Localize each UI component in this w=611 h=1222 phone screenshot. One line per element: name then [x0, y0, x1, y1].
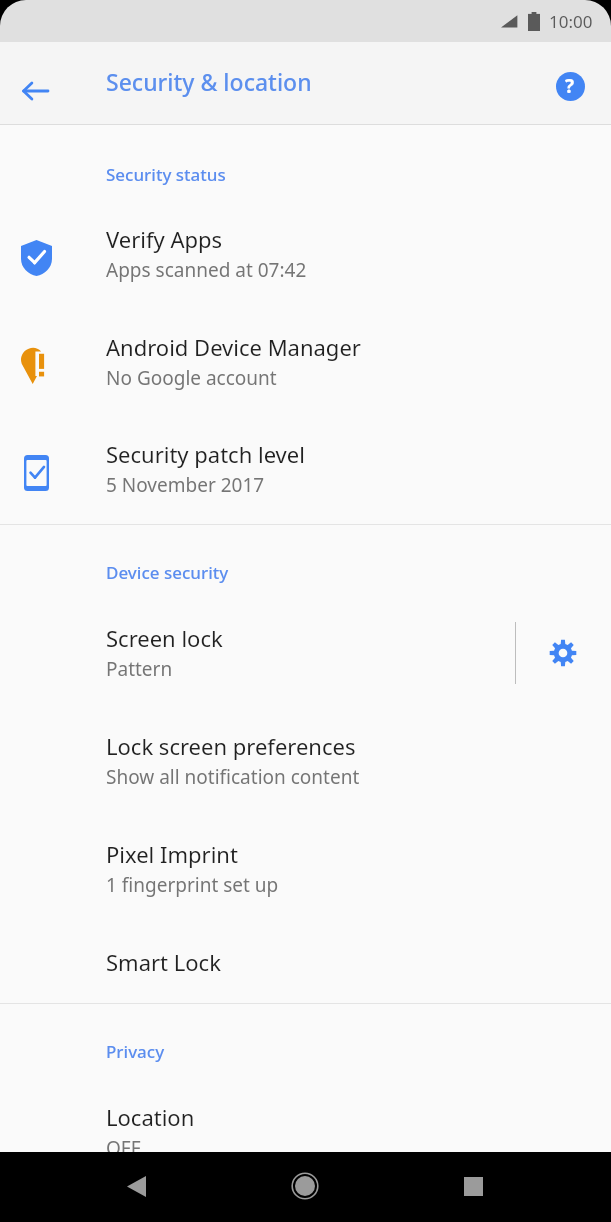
- staticText: 10:00: [549, 10, 593, 33]
- staticText: No Google account: [106, 365, 277, 391]
- staticText: Android Device Manager: [106, 332, 361, 362]
- staticText: 1 fingerprint set up: [106, 872, 279, 898]
- button[interactable]: Smart Lock: [0, 935, 611, 991]
- staticText: Privacy: [106, 1040, 165, 1063]
- button[interactable]: Recent apps: [441, 1154, 505, 1218]
- staticText: Pixel Imprint: [106, 839, 238, 869]
- button[interactable]: Screen lock: [0, 611, 611, 695]
- staticText: Apps scanned at 07:42: [106, 257, 307, 283]
- staticText: Screen lock: [106, 623, 223, 653]
- button[interactable]: Pixel Imprint: [0, 827, 611, 911]
- staticText: Lock screen preferences: [106, 731, 356, 761]
- staticText: Security & location: [106, 66, 312, 97]
- button[interactable]: Security patch level: [0, 427, 611, 511]
- staticText: Smart Lock: [106, 947, 221, 977]
- button[interactable]: Screen lock settings: [539, 629, 587, 677]
- staticText: Security patch level: [106, 439, 305, 469]
- staticText: Show all notification content: [106, 764, 360, 790]
- staticText: Security status: [106, 163, 226, 186]
- staticText: Pattern: [106, 656, 173, 682]
- button[interactable]: Location: [0, 1090, 611, 1174]
- button[interactable]: Help: [546, 62, 594, 110]
- staticText: 5 November 2017: [106, 472, 265, 498]
- staticText: OFF: [106, 1135, 141, 1161]
- staticText: Verify Apps: [106, 224, 223, 254]
- staticText: ?: [565, 73, 575, 99]
- button[interactable]: Android Device Manager: [0, 320, 611, 404]
- button[interactable]: Lock screen preferences: [0, 719, 611, 803]
- staticText: Location: [106, 1102, 195, 1132]
- button[interactable]: Verify Apps: [0, 212, 611, 296]
- button[interactable]: Home: [273, 1154, 337, 1218]
- button[interactable]: Back: [14, 69, 70, 113]
- staticText: Device security: [106, 561, 229, 584]
- button[interactable]: Back: [104, 1154, 168, 1218]
